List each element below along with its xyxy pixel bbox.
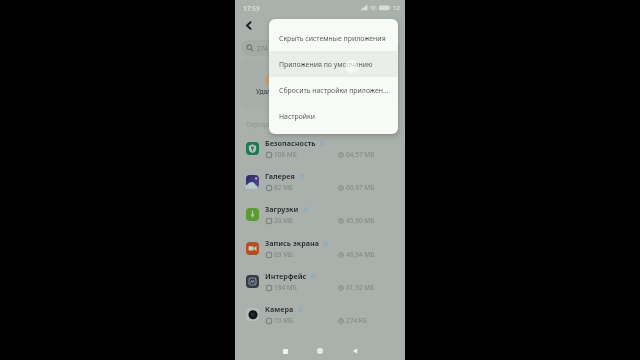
staticText: Настройки xyxy=(279,112,316,121)
staticText: 45,90 МБ xyxy=(346,216,375,225)
staticText: Загрузки xyxy=(265,204,299,214)
button[interactable]: Home xyxy=(309,340,331,360)
staticText: Удалить xyxy=(256,87,282,96)
button[interactable]: Приложения по умолчанию xyxy=(269,51,398,77)
staticText: 274 приложения xyxy=(257,44,307,52)
staticText: 194 МБ xyxy=(274,283,297,292)
staticText: Безопасность xyxy=(265,138,316,148)
button[interactable]: Back xyxy=(237,15,257,35)
button[interactable]: Загрузки xyxy=(235,198,405,231)
staticText: 60,97 МБ xyxy=(346,183,375,192)
staticText: Скрыть системные приложения xyxy=(279,34,386,43)
staticText: Сбросить настройки приложен… xyxy=(279,86,389,95)
staticText: Запись экрана xyxy=(265,238,319,248)
button[interactable]: Камера xyxy=(235,298,405,331)
button[interactable]: Удалить xyxy=(246,58,292,110)
button[interactable]: Настройки xyxy=(269,103,398,129)
staticText: Сортировка xyxy=(246,120,282,128)
staticText: 46,94 МБ xyxy=(346,250,375,259)
button[interactable]: Интерфейс xyxy=(235,265,405,298)
staticText: Очистить xyxy=(306,87,337,96)
staticText: Камера xyxy=(265,304,294,314)
staticText: Приложения по умолчанию xyxy=(279,60,373,69)
staticText: 20 МБ xyxy=(274,216,294,225)
button[interactable]: Сбросить настройки приложен… xyxy=(269,77,398,103)
staticText: 274 КБ xyxy=(346,316,367,325)
staticText: 10 МБ xyxy=(274,316,294,325)
staticText: Интерфейс xyxy=(265,271,307,281)
button[interactable]: Скрыть системные приложения xyxy=(269,25,398,51)
staticText: 106 МБ xyxy=(274,150,297,159)
button[interactable]: Очистить xyxy=(298,58,344,110)
button[interactable]: Запись экрана xyxy=(235,232,405,265)
button[interactable]: Ускорить xyxy=(349,58,395,110)
staticText: 64,57 МБ xyxy=(346,150,375,159)
staticText: 12 xyxy=(393,4,400,12)
staticText: 69 МБ xyxy=(274,250,294,259)
button[interactable]: Back xyxy=(344,340,366,360)
button[interactable]: Recent apps xyxy=(274,340,296,360)
staticText: Галерея xyxy=(265,171,295,181)
button[interactable]: Галерея xyxy=(235,165,405,198)
button[interactable]: Безопасность xyxy=(235,132,405,165)
staticText: 17:59 xyxy=(243,4,260,13)
button[interactable]: 274 приложения xyxy=(241,40,400,56)
staticText: 82 МБ xyxy=(274,183,294,192)
staticText: Ускорить xyxy=(357,87,387,96)
staticText: 61,92 МБ xyxy=(346,283,375,292)
